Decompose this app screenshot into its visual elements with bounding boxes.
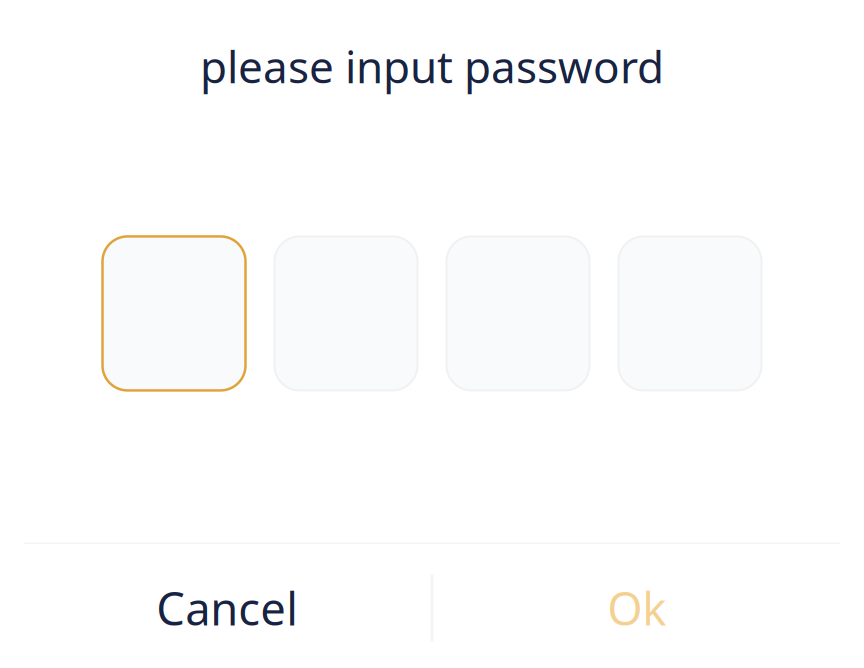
button[interactable]: Cancel: [24, 544, 430, 668]
staticText: please input password: [200, 37, 664, 95]
button[interactable]: Password digit 1: [102, 236, 245, 390]
button[interactable]: Ok: [433, 544, 840, 668]
staticText: Cancel: [156, 578, 298, 638]
staticText: Ok: [607, 578, 666, 638]
